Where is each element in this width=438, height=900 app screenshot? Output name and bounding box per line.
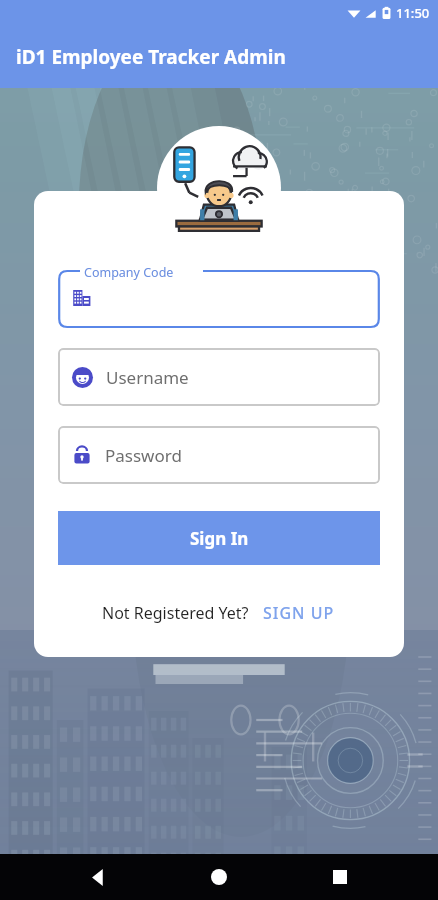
button[interactable]: Back bbox=[75, 854, 121, 900]
button[interactable]: SIGN UP bbox=[261, 598, 337, 628]
staticText: 11:50 bbox=[396, 4, 430, 22]
staticText: Password bbox=[105, 444, 182, 467]
staticText: iD1 Employee Tracker Admin bbox=[16, 44, 286, 70]
button[interactable]: Username bbox=[58, 348, 380, 406]
button[interactable]: Password bbox=[58, 426, 380, 484]
button[interactable]: Home bbox=[196, 854, 242, 900]
staticText: SIGN UP bbox=[263, 602, 335, 624]
staticText: Sign In bbox=[190, 527, 249, 550]
button[interactable]: Recent apps bbox=[317, 854, 363, 900]
button[interactable]: Sign In bbox=[58, 511, 380, 565]
button[interactable]: Company Code bbox=[58, 261, 380, 327]
staticText: Username bbox=[106, 366, 189, 389]
staticText: Company Code bbox=[84, 264, 174, 281]
staticText: Not Registered Yet? bbox=[102, 602, 249, 624]
